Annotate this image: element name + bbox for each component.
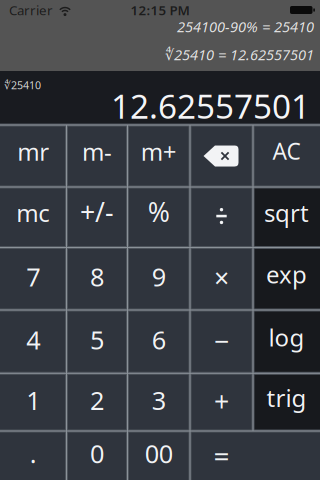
button[interactable]: +/-	[66, 187, 127, 247]
button[interactable]: ×	[190, 247, 253, 310]
staticText: −	[214, 323, 229, 358]
staticText: 5	[90, 323, 104, 356]
button[interactable]: .	[0, 431, 66, 480]
staticText: 12:15 PM	[130, 1, 189, 19]
staticText: 3	[152, 383, 166, 417]
staticText: .	[30, 437, 37, 470]
staticText: ∜25410 = 12.62557501	[165, 45, 314, 64]
staticText: 12.62557501	[111, 84, 310, 128]
staticText: log	[268, 321, 304, 353]
staticText: sqrt	[264, 197, 309, 229]
button[interactable]: m-	[66, 125, 127, 187]
button[interactable]: 8	[66, 247, 127, 310]
button[interactable]: mc	[0, 187, 66, 247]
button[interactable]: +	[190, 373, 253, 431]
button[interactable]: −	[190, 310, 253, 373]
button[interactable]: mr	[0, 125, 66, 187]
staticText: 8	[90, 260, 104, 293]
staticText: 4	[26, 323, 40, 356]
staticText: 6	[152, 323, 166, 356]
staticText: exp	[266, 258, 307, 290]
staticText: 0	[90, 437, 104, 470]
staticText: =	[213, 437, 229, 474]
button[interactable]: 2	[66, 373, 127, 431]
staticText: 00	[145, 437, 173, 470]
button[interactable]: 9	[127, 247, 190, 310]
button[interactable]: 7	[0, 247, 66, 310]
staticText: 7	[26, 260, 40, 293]
staticText: ×	[214, 260, 229, 295]
button[interactable]: =	[190, 431, 320, 480]
button[interactable]: 6	[127, 310, 190, 373]
staticText: %	[148, 194, 170, 229]
staticText: AC	[272, 136, 300, 166]
button[interactable]: Delete	[190, 125, 253, 187]
button[interactable]: 0	[66, 431, 127, 480]
staticText: m+	[141, 136, 177, 167]
staticText: Carrier	[9, 1, 53, 19]
button[interactable]: %	[127, 187, 190, 247]
button[interactable]: m+	[127, 125, 190, 187]
button[interactable]: 00	[127, 431, 190, 480]
button[interactable]: Divide	[190, 187, 253, 247]
staticText: ∜25410	[4, 78, 41, 92]
button[interactable]: trig	[253, 373, 320, 431]
button[interactable]: log	[253, 310, 320, 373]
button[interactable]: 1	[0, 373, 66, 431]
button[interactable]: 3	[127, 373, 190, 431]
button[interactable]: AC	[253, 125, 320, 187]
staticText: mr	[17, 136, 49, 167]
staticText: trig	[266, 382, 306, 414]
staticText: 254100−90% = 25410	[177, 17, 314, 36]
staticText: +	[214, 383, 229, 419]
staticText: +/-	[80, 194, 114, 229]
button[interactable]: sqrt	[253, 187, 320, 247]
button[interactable]: 4	[0, 310, 66, 373]
staticText: 9	[152, 260, 166, 293]
staticText: m-	[82, 136, 112, 167]
staticText: mc	[16, 197, 50, 229]
staticText: 2	[90, 383, 104, 417]
staticText: 1	[26, 383, 40, 417]
button[interactable]: 5	[66, 310, 127, 373]
button[interactable]: exp	[253, 247, 320, 310]
